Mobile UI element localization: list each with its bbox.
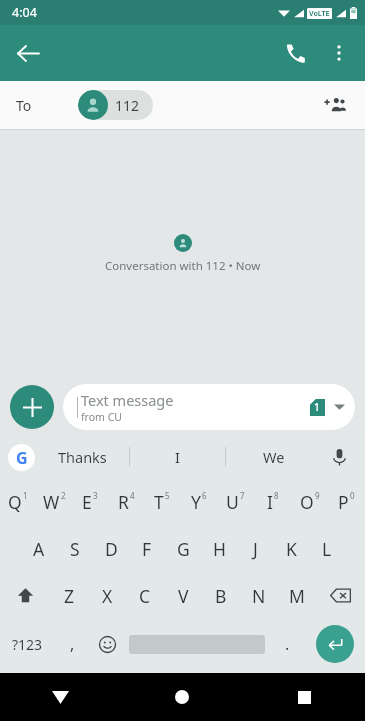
staticText: W (43, 490, 60, 514)
staticText: Y (191, 490, 201, 514)
button[interactable]: V (164, 572, 202, 619)
button[interactable]: . (269, 619, 305, 669)
button[interactable]: I (254, 478, 291, 525)
staticText: 112 (115, 96, 140, 115)
staticText: D (105, 537, 118, 561)
button[interactable]: Thanks (35, 436, 129, 478)
button[interactable]: ?123 (0, 619, 55, 669)
staticText: ?123 (12, 635, 43, 654)
staticText: , (70, 633, 75, 655)
staticText: Z (64, 584, 75, 608)
staticText: To (16, 96, 32, 115)
button[interactable]: , (55, 619, 89, 669)
button[interactable]: L (309, 525, 345, 572)
staticText: E (82, 490, 92, 514)
staticText: G (16, 447, 28, 469)
staticText: X (102, 584, 113, 608)
staticText: U (226, 490, 239, 514)
button[interactable]: Home (121, 673, 243, 721)
staticText: Text message (81, 390, 174, 410)
button[interactable]: Voice input (321, 436, 357, 478)
button[interactable]: J (237, 525, 273, 572)
button[interactable]: W (36, 478, 72, 525)
button[interactable]: Y (180, 478, 217, 525)
staticText: Conversation with 112 • Now (105, 258, 261, 274)
button[interactable]: Call (273, 31, 317, 75)
staticText: O (300, 490, 314, 514)
staticText: Thanks (58, 447, 107, 467)
button[interactable]: X (88, 572, 126, 619)
staticText: 4 (130, 490, 135, 501)
button[interactable]: R (108, 478, 144, 525)
staticText: I (267, 490, 273, 514)
button[interactable]: N (240, 572, 278, 619)
staticText: 1 (23, 490, 28, 501)
button[interactable]: U (217, 478, 254, 525)
staticText: 7 (240, 490, 245, 501)
button[interactable]: K (273, 525, 309, 572)
staticText: G (177, 537, 190, 561)
button[interactable]: D (93, 525, 129, 572)
staticText: A (33, 537, 45, 561)
button[interactable]: Google (8, 444, 35, 471)
button[interactable]: More options (317, 31, 361, 75)
staticText: We (263, 447, 285, 467)
button[interactable]: Attach (10, 385, 54, 429)
staticText: 8 (274, 490, 279, 501)
staticText: C (139, 584, 151, 608)
button[interactable]: I (130, 436, 225, 478)
button[interactable]: Recents (243, 673, 365, 721)
button[interactable]: Back (6, 31, 50, 75)
staticText: K (286, 537, 297, 561)
staticText: S (70, 537, 80, 561)
button[interactable]: T (144, 478, 180, 525)
staticText: . (285, 633, 290, 655)
button[interactable]: S (57, 525, 93, 572)
button[interactable]: Add people (315, 85, 355, 125)
staticText: N (252, 584, 266, 608)
button[interactable]: E (72, 478, 108, 525)
staticText: M (289, 584, 305, 608)
staticText: 6 (202, 490, 207, 501)
staticText: 9 (315, 490, 320, 501)
staticText: H (213, 537, 226, 561)
staticText: 4:04 (12, 4, 37, 21)
button[interactable]: Text message (63, 384, 355, 430)
button[interactable]: Back (0, 673, 121, 721)
button[interactable]: M (278, 572, 316, 619)
button[interactable]: F (129, 525, 165, 572)
staticText: 0 (350, 490, 355, 501)
staticText: F (142, 537, 152, 561)
button[interactable]: We (226, 436, 321, 478)
button[interactable]: 112 (78, 90, 153, 120)
staticText: P (338, 490, 349, 514)
staticText: I (175, 447, 180, 467)
button[interactable]: Send (305, 619, 365, 669)
button[interactable]: P (328, 478, 365, 525)
staticText: 3 (93, 490, 98, 501)
button[interactable]: H (201, 525, 237, 572)
button[interactable]: Shift (0, 572, 50, 619)
button[interactable]: C (126, 572, 164, 619)
staticText: 2 (61, 490, 66, 501)
staticText: V (178, 584, 189, 608)
staticText: R (118, 490, 129, 514)
staticText: 1 (314, 400, 320, 414)
button[interactable]: G (165, 525, 201, 572)
button[interactable]: Q (0, 478, 36, 525)
staticText: T (154, 490, 164, 514)
staticText: B (215, 584, 227, 608)
button[interactable]: Emoji (89, 619, 125, 669)
button[interactable]: O (291, 478, 328, 525)
staticText: J (253, 537, 258, 561)
staticText: Q (8, 490, 22, 514)
button[interactable]: A (21, 525, 57, 572)
staticText: 5 (165, 490, 170, 501)
button[interactable]: B (202, 572, 240, 619)
staticText: from CU (81, 410, 122, 424)
staticText: VoLTE (309, 9, 330, 19)
staticText: L (322, 537, 332, 561)
button[interactable]: Z (50, 572, 88, 619)
button[interactable]: Backspace (316, 572, 365, 619)
